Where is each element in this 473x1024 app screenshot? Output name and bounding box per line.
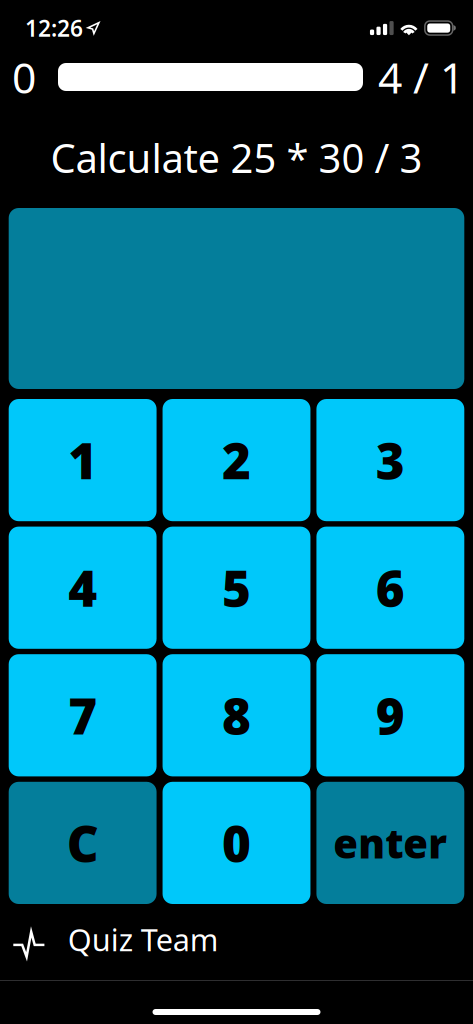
staticText: 2 — [222, 427, 251, 493]
button[interactable]: 5 — [163, 527, 310, 649]
staticText: 5 — [222, 555, 251, 620]
staticText: 12:26 — [25, 13, 83, 43]
staticText: 3 — [376, 427, 405, 493]
button[interactable]: 3 — [316, 399, 464, 521]
staticText: enter — [333, 816, 447, 869]
staticText: Quiz Team — [68, 919, 219, 960]
button[interactable]: 4 — [9, 527, 157, 649]
button[interactable]: 2 — [163, 399, 310, 521]
staticText: 0 — [222, 810, 251, 876]
staticText: C — [67, 810, 99, 876]
button[interactable]: 8 — [163, 654, 310, 776]
staticText: 9 — [376, 682, 405, 748]
button[interactable]: 1 — [9, 399, 157, 521]
staticText: 6 — [376, 555, 405, 620]
staticText: 7 — [68, 682, 97, 748]
button[interactable]: 0 — [163, 782, 310, 904]
button[interactable]: enter — [316, 782, 464, 904]
staticText: 0 — [12, 49, 36, 105]
staticText: Calculate 25 * 30 / 3 — [50, 131, 422, 184]
staticText: 4 — [68, 555, 97, 620]
button[interactable]: 6 — [316, 527, 464, 649]
button[interactable]: Quiz Team — [0, 904, 473, 980]
button[interactable]: 9 — [316, 654, 464, 776]
button[interactable]: 7 — [9, 654, 157, 776]
staticText: 4 / 1 — [378, 49, 464, 105]
staticText: 8 — [222, 682, 251, 748]
staticText: 1 — [68, 427, 97, 493]
button[interactable]: C — [9, 782, 157, 904]
